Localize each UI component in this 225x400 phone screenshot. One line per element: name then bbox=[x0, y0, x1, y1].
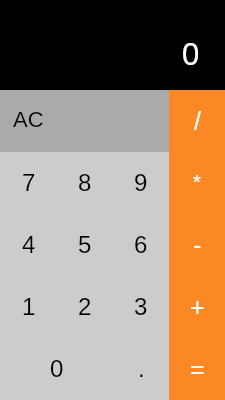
staticText: 6 bbox=[134, 231, 148, 258]
button[interactable]: 0 bbox=[0, 338, 113, 400]
button[interactable]: . bbox=[113, 338, 169, 400]
staticText: * bbox=[193, 171, 201, 193]
staticText: - bbox=[193, 231, 202, 259]
button[interactable]: 8 bbox=[57, 152, 113, 214]
button[interactable]: Subtract bbox=[169, 214, 225, 276]
button[interactable]: 5 bbox=[57, 214, 113, 276]
staticText: 3 bbox=[134, 293, 148, 320]
staticText: 4 bbox=[22, 231, 36, 258]
staticText: 2 bbox=[78, 293, 92, 320]
button[interactable]: Multiply bbox=[169, 152, 225, 214]
staticText: . bbox=[138, 355, 145, 382]
button[interactable]: AC bbox=[0, 90, 169, 152]
button[interactable]: 4 bbox=[0, 214, 57, 276]
button[interactable]: 7 bbox=[0, 152, 57, 214]
staticText: 0 bbox=[182, 37, 200, 72]
button[interactable]: Add bbox=[169, 276, 225, 338]
staticText: 5 bbox=[78, 231, 92, 258]
staticText: + bbox=[190, 293, 205, 321]
staticText: AC bbox=[13, 107, 44, 132]
button[interactable]: Divide bbox=[169, 90, 225, 152]
staticText: 7 bbox=[22, 169, 36, 196]
staticText: 8 bbox=[78, 169, 92, 196]
staticText: / bbox=[194, 107, 201, 135]
staticText: 9 bbox=[134, 169, 148, 196]
button[interactable]: Equals bbox=[169, 338, 225, 400]
staticText: 0 bbox=[50, 355, 64, 382]
button[interactable]: 3 bbox=[113, 276, 169, 338]
staticText: 1 bbox=[22, 293, 36, 320]
button[interactable]: 1 bbox=[0, 276, 57, 338]
button[interactable]: 2 bbox=[57, 276, 113, 338]
button[interactable]: 9 bbox=[113, 152, 169, 214]
staticText: = bbox=[190, 355, 205, 383]
button[interactable]: 6 bbox=[113, 214, 169, 276]
